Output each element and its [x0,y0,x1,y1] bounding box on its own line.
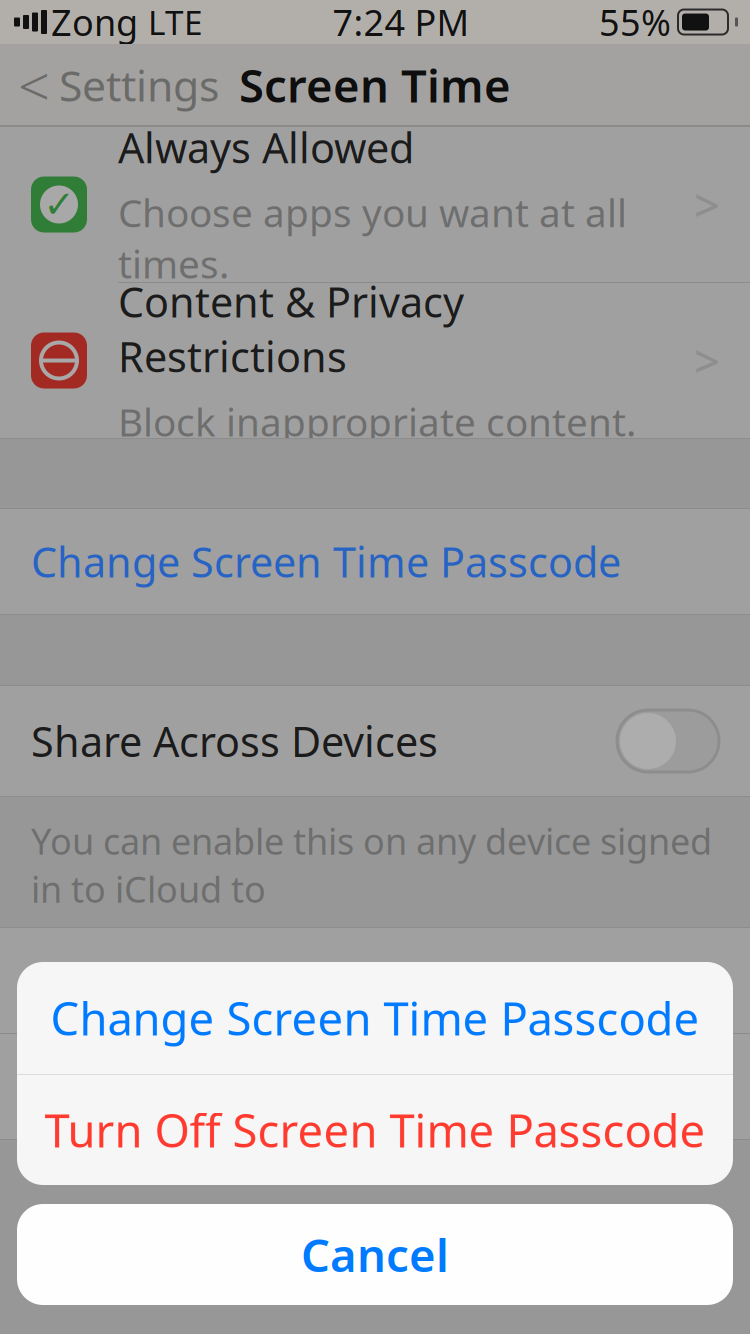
staticText: Block inappropriate content. [118,396,636,447]
staticText: Change Screen Time Passcode [50,988,699,1048]
staticText: ✓ [43,183,74,226]
button[interactable]: < [0,36,219,134]
staticText: Content & Privacy Restrictions [118,274,464,384]
staticText: report your combined screen time. [31,919,614,966]
staticText: LTE [148,0,203,44]
staticText: < [18,48,50,122]
staticText: Zong [51,0,138,46]
button[interactable]: Set Up Screen Time for Family [0,928,750,1033]
button[interactable]: ✓ [0,127,750,282]
staticText: Settings [59,57,219,113]
staticText: Change Screen Time Passcode [31,534,621,589]
button[interactable]: Turn Off Screen Time Passcode [17,1075,733,1185]
button[interactable]: Turn Off Screen Time [0,1034,750,1139]
staticText: Turn Off Screen Time [31,1059,441,1114]
button[interactable]: Share Across Devices [0,686,750,796]
staticText: Turn Off Screen Time Passcode [44,1100,705,1160]
staticText: 55% [599,0,671,46]
staticText: Always Allowed [118,120,414,175]
button[interactable]: Cancel [17,1204,733,1305]
staticText: Screen Time [239,55,511,115]
button[interactable]: Change Screen Time Passcode [0,509,750,614]
button[interactable]: Share Across Devices [617,710,719,772]
staticText: You can enable this on any device signed… [31,817,712,913]
staticText: Set Up Screen Time for Family [31,953,611,1008]
staticText: > [694,174,720,235]
staticText: Cancel [301,1224,449,1285]
staticText: 7:24 PM [332,0,469,46]
button[interactable]: Change Screen Time Passcode [17,962,733,1074]
staticText: Choose apps you want at all times. [118,187,627,289]
staticText: Share Across Devices [31,714,438,768]
staticText: > [694,330,720,391]
button[interactable]: Content & Privacy Restrictions [0,283,750,438]
